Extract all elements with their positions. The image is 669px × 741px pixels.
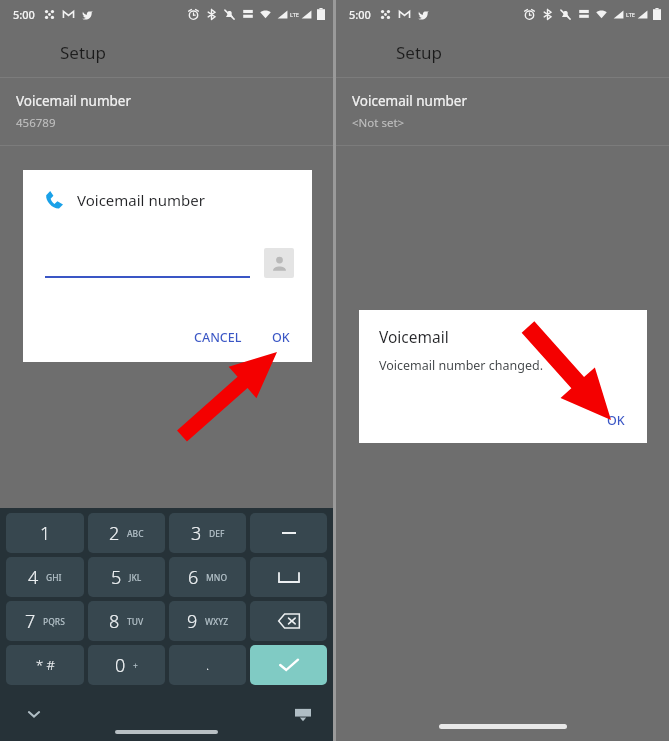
button[interactable]: Hide keyboard xyxy=(26,706,42,722)
staticText: Setup xyxy=(396,41,443,64)
button[interactable]: * # xyxy=(6,645,84,685)
staticText: OK xyxy=(272,329,290,346)
staticText: 0 xyxy=(115,653,126,678)
staticText: LTE xyxy=(626,11,635,18)
button[interactable]: 3 xyxy=(169,513,246,553)
staticText: . xyxy=(206,656,210,674)
staticText: LTE xyxy=(290,11,299,18)
staticText: 8 xyxy=(109,609,120,634)
staticText: 9 xyxy=(187,609,198,634)
staticText: 4 xyxy=(28,565,39,590)
button[interactable]: 0 xyxy=(88,645,165,685)
button[interactable]: 5 xyxy=(88,557,165,597)
staticText: 1 xyxy=(40,521,51,546)
button[interactable]: Done xyxy=(250,645,327,685)
staticText: 2 xyxy=(109,521,120,546)
button[interactable]: OK xyxy=(264,323,298,352)
button[interactable]: Backspace xyxy=(250,601,327,641)
button[interactable]: Voicemail number xyxy=(336,78,669,145)
staticText: OK xyxy=(607,412,625,429)
staticText: TUV xyxy=(127,616,144,628)
button[interactable]: Dash xyxy=(250,513,327,553)
staticText: + xyxy=(133,660,138,672)
staticText: 7 xyxy=(25,609,36,634)
button[interactable]: 9 xyxy=(169,601,246,641)
staticText: MNO xyxy=(206,572,228,584)
staticText: 5 xyxy=(111,565,122,590)
button[interactable]: 6 xyxy=(169,557,246,597)
staticText: Voicemail number xyxy=(352,92,468,110)
button[interactable]: Space xyxy=(250,557,327,597)
staticText: Voicemail number xyxy=(16,92,132,110)
button[interactable]: Pick contact xyxy=(264,248,294,278)
staticText: 456789 xyxy=(16,115,56,131)
staticText: WXYZ xyxy=(205,616,229,628)
staticText: DEF xyxy=(209,528,225,540)
staticText: GHI xyxy=(46,572,62,584)
staticText: * # xyxy=(36,656,55,674)
button[interactable]: Change keyboard xyxy=(295,706,311,722)
staticText: 3 xyxy=(191,521,202,546)
staticText: 5:00 xyxy=(349,7,371,22)
staticText: Setup xyxy=(60,41,107,64)
staticText: Voicemail number changed. xyxy=(379,357,544,374)
staticText: 6 xyxy=(188,565,199,590)
button[interactable]: OK xyxy=(599,406,633,435)
staticText: PQRS xyxy=(43,616,65,628)
staticText: JKL xyxy=(129,572,142,584)
button[interactable]: CANCEL xyxy=(186,323,250,352)
staticText: Voicemail xyxy=(379,326,449,347)
button[interactable]: Voicemail number xyxy=(0,78,333,145)
button[interactable]: 1 xyxy=(6,513,84,553)
staticText: <Not set> xyxy=(352,115,405,131)
button[interactable]: 8 xyxy=(88,601,165,641)
button[interactable]: 4 xyxy=(6,557,84,597)
button[interactable]: 2 xyxy=(88,513,165,553)
staticText: ABC xyxy=(127,528,144,540)
button[interactable]: 7 xyxy=(6,601,84,641)
staticText: 5:00 xyxy=(13,7,35,22)
button[interactable]: . xyxy=(169,645,246,685)
staticText: Voicemail number xyxy=(77,190,205,210)
staticText: CANCEL xyxy=(194,329,242,346)
